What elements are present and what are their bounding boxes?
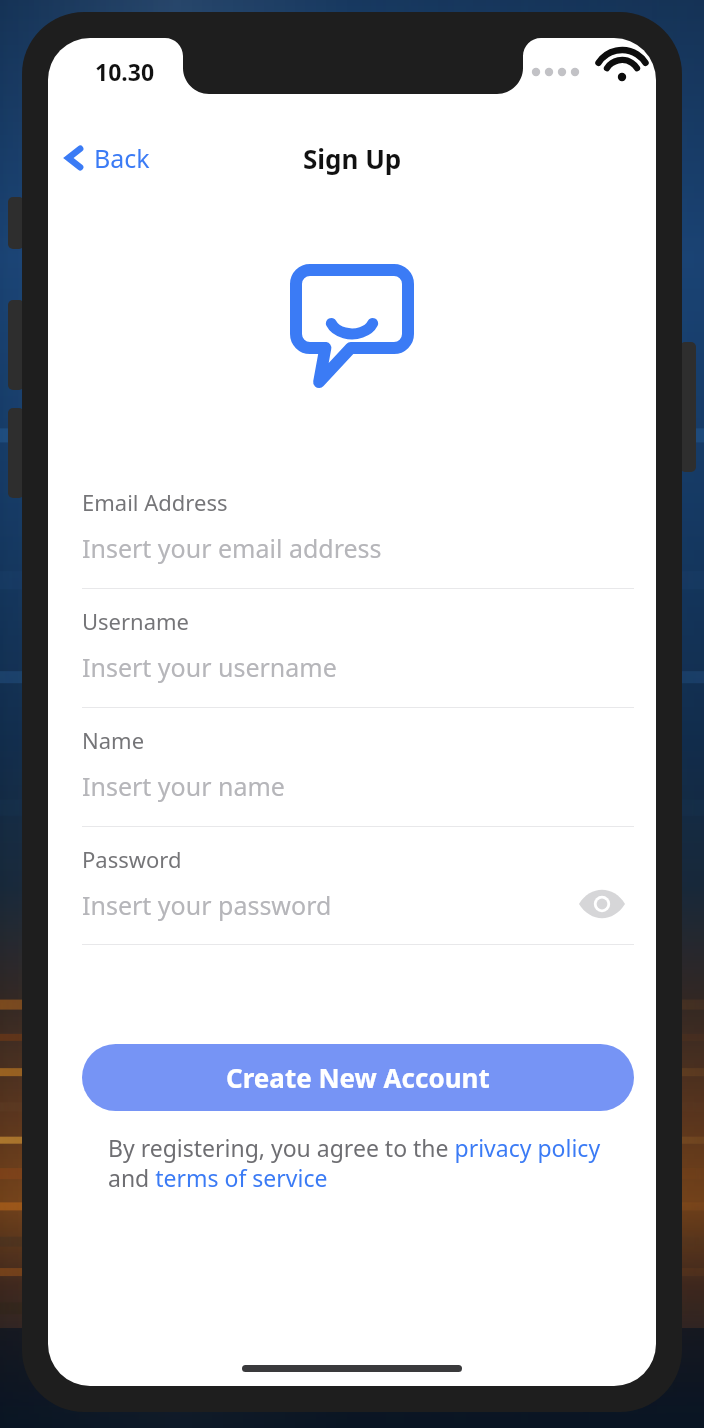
button[interactable]: Create New Account	[82, 1044, 634, 1111]
button[interactable]: Back	[54, 130, 166, 186]
staticText: Insert your name	[82, 769, 285, 803]
staticText: Sign Up	[303, 141, 402, 176]
staticText: Email Address	[82, 487, 228, 517]
staticText: Back	[94, 141, 150, 175]
staticText: Insert your email address	[82, 531, 382, 565]
staticText: Insert your password	[82, 888, 332, 922]
button[interactable]: Password	[82, 832, 634, 950]
staticText: By registering, you agree to the privacy…	[108, 1132, 608, 1194]
staticText: Name	[82, 725, 145, 755]
button[interactable]: Show password	[580, 882, 624, 926]
staticText: 10.30	[95, 56, 155, 87]
button[interactable]: Name	[82, 713, 634, 832]
staticText: Password	[82, 844, 182, 874]
staticText: Insert your username	[82, 650, 337, 684]
staticText: Create New Account	[226, 1060, 490, 1095]
button[interactable]: By registering, you agree to the privacy…	[108, 1132, 608, 1194]
staticText: Username	[82, 606, 190, 636]
button[interactable]: Email Address	[82, 475, 634, 594]
button[interactable]: Username	[82, 594, 634, 713]
